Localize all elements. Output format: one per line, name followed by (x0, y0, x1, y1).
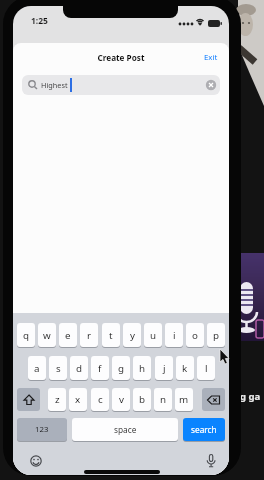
staticText: search (191, 424, 217, 435)
staticText: j (163, 362, 166, 375)
button[interactable]: h (133, 356, 151, 380)
staticText: s (56, 362, 61, 375)
button[interactable]: y (123, 323, 141, 347)
button[interactable]: space (72, 418, 178, 441)
button[interactable]: u (144, 323, 162, 347)
button[interactable]: a (28, 356, 46, 380)
staticText: y (130, 329, 135, 342)
staticText: f (98, 362, 102, 375)
staticText: l (205, 362, 208, 375)
button[interactable]: z (48, 388, 66, 411)
staticText: q (23, 329, 30, 342)
button[interactable]: t (102, 323, 120, 347)
staticText: p (213, 329, 220, 342)
staticText: Create Post (13, 52, 229, 64)
staticText: t (109, 329, 113, 342)
staticText: z (55, 393, 60, 406)
staticText: Highest (41, 80, 68, 90)
button[interactable]: k (176, 356, 194, 380)
button[interactable]: Exit (199, 50, 223, 64)
button[interactable]: p (207, 323, 225, 347)
button[interactable]: m (175, 388, 193, 411)
button[interactable] (17, 388, 40, 411)
button[interactable]: Highest (22, 75, 220, 95)
button[interactable]: v (112, 388, 130, 411)
staticText: m (179, 393, 189, 406)
staticText: e (65, 329, 71, 342)
staticText: g (118, 362, 125, 375)
button[interactable]: f (91, 356, 109, 380)
staticText: x (75, 393, 81, 406)
staticText: v (119, 393, 124, 406)
button[interactable]: r (80, 323, 98, 347)
button[interactable]: b (133, 388, 151, 411)
button[interactable]: e (59, 323, 77, 347)
staticText: d (76, 362, 83, 375)
staticText: i (173, 329, 176, 342)
staticText: c (98, 393, 103, 406)
button[interactable]: x (69, 388, 87, 411)
staticText: space (114, 424, 137, 435)
staticText: b (139, 393, 146, 406)
button[interactable]: w (38, 323, 56, 347)
button[interactable]: q (17, 323, 35, 347)
button[interactable]: search (183, 418, 225, 441)
staticText: w (43, 329, 51, 342)
staticText: n (160, 393, 167, 406)
button[interactable]: o (186, 323, 204, 347)
staticText: 1:25 (31, 15, 48, 27)
button[interactable]: c (91, 388, 109, 411)
button[interactable]: i (165, 323, 183, 347)
staticText: g ga (240, 390, 261, 403)
staticText: Exit (204, 52, 218, 63)
button[interactable] (202, 388, 225, 411)
button[interactable]: l (197, 356, 215, 380)
staticText: a (34, 362, 40, 375)
button[interactable]: 123 (17, 418, 67, 441)
button[interactable]: j (155, 356, 173, 380)
staticText: o (192, 329, 198, 342)
button[interactable]: n (154, 388, 172, 411)
button[interactable]: g (112, 356, 130, 380)
button[interactable]: d (70, 356, 88, 380)
staticText: r (87, 329, 92, 342)
button[interactable]: s (49, 356, 67, 380)
staticText: h (139, 362, 146, 375)
staticText: u (150, 329, 157, 342)
staticText: 123 (35, 424, 49, 435)
staticText: k (182, 362, 188, 375)
